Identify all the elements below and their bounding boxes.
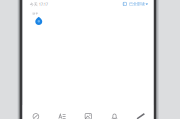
button[interactable]: Compose [128,105,154,119]
button[interactable]: 已全部读 [123,1,148,6]
button[interactable]: Photos [75,105,101,119]
staticText: 已全部读 [129,1,145,6]
button[interactable]: Messages [23,105,49,119]
staticText: 助手 [32,12,38,15]
button[interactable]: Transcript [49,105,75,119]
staticText: 今天 17:17 [30,1,48,7]
button[interactable]: Notifications [101,105,128,119]
